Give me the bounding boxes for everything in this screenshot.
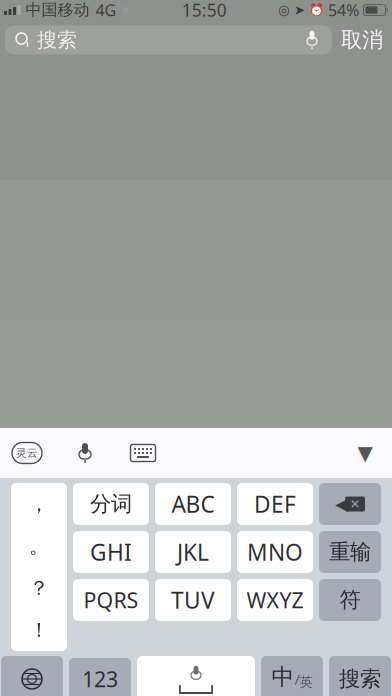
staticText: ⏰ [309, 3, 324, 17]
button[interactable]: MNO [237, 531, 313, 573]
button[interactable]: GHI [73, 531, 149, 573]
button[interactable]: ABC [155, 483, 231, 525]
button[interactable]: WXYZ [237, 579, 313, 621]
staticText: ， [29, 492, 49, 516]
button[interactable]: TUV [155, 579, 231, 621]
staticText: ◎ [278, 2, 290, 17]
staticText: 分词 [90, 491, 132, 517]
staticText: PQRS [83, 586, 138, 614]
staticText: ！ [29, 618, 49, 642]
staticText: 取消 [341, 27, 383, 53]
button[interactable]: 取消 [332, 23, 392, 57]
staticText: TUV [171, 585, 215, 615]
button[interactable]: 删除 [319, 483, 381, 525]
button[interactable]: 语音输入 [63, 436, 107, 470]
button[interactable]: 收起键盘 [345, 436, 385, 470]
staticText: 灵云 [16, 446, 38, 459]
staticText: 英 [299, 674, 312, 690]
staticText: MNO [247, 537, 303, 567]
button[interactable]: 搜索 [329, 656, 391, 696]
staticText: ✳ [120, 3, 130, 17]
staticText: 中 [271, 663, 294, 691]
button[interactable]: DEF [237, 483, 313, 525]
staticText: 搜索 [37, 28, 77, 52]
button[interactable]: 符 [319, 579, 381, 621]
staticText: ➤ [294, 2, 305, 17]
button[interactable]: JKL [155, 531, 231, 573]
staticText: 搜索 [339, 666, 381, 692]
button[interactable]: 分词 [73, 483, 149, 525]
button[interactable]: 中英文切换 [261, 656, 323, 696]
staticText: / [294, 669, 299, 689]
staticText: ▼ [357, 442, 372, 464]
button[interactable]: 键盘设置 [121, 436, 165, 470]
staticText: ◀ [335, 494, 348, 514]
staticText: 重输 [329, 539, 371, 565]
button[interactable]: 切换输入法 [1, 656, 63, 696]
staticText: 符 [339, 587, 360, 613]
button[interactable]: 搜索 [5, 25, 332, 54]
button[interactable]: PQRS [73, 579, 149, 621]
button[interactable]: 重输 [319, 531, 381, 573]
staticText: GHI [90, 537, 132, 567]
button[interactable]: 123 [69, 658, 131, 696]
staticText: ？ [29, 576, 49, 600]
staticText: 123 [82, 665, 118, 693]
staticText: ✕ [350, 497, 360, 511]
button[interactable]: 标点符号 [11, 483, 67, 651]
staticText: 15:50 [182, 0, 227, 21]
button[interactable]: 空格 [137, 656, 255, 696]
staticText: DEF [254, 489, 296, 519]
staticText: JKL [177, 537, 209, 567]
staticText: ABC [171, 489, 214, 519]
staticText: 54% [328, 0, 359, 21]
staticText: 中国移动 [25, 0, 89, 20]
staticText: WXYZ [246, 586, 303, 614]
button[interactable]: 灵云输入法 [5, 436, 49, 470]
staticText: 。 [29, 534, 49, 558]
staticText: 4G [95, 0, 116, 21]
